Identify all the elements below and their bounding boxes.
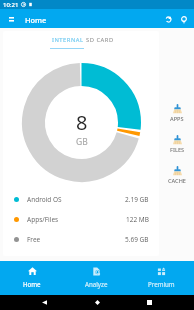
staticText: 5.69 GB: [125, 235, 149, 244]
staticText: 10:21: [3, 1, 19, 9]
button[interactable]: Menu: [3, 11, 19, 27]
staticText: APPS: [170, 115, 184, 123]
button[interactable]: Apps/Files: [14, 209, 149, 229]
staticText: 122 MB: [126, 215, 149, 224]
staticText: CACHE: [168, 177, 186, 185]
staticText: 8: [76, 109, 88, 136]
staticText: Home: [23, 280, 41, 288]
button[interactable]: Back: [38, 296, 51, 309]
staticText: Home: [25, 15, 47, 25]
staticText: Analyze: [85, 280, 108, 288]
button[interactable]: Refresh: [160, 11, 176, 27]
button[interactable]: Premium: [129, 261, 194, 295]
button[interactable]: Tips: [176, 11, 192, 27]
staticText: INTERNAL: [52, 36, 84, 44]
button[interactable]: INTERNAL: [38, 31, 98, 48]
staticText: 2.19 GB: [125, 195, 149, 204]
staticText: FILES: [170, 146, 185, 154]
staticText: GB: [76, 136, 88, 148]
button[interactable]: APPS: [162, 104, 192, 123]
staticText: Apps/Files: [27, 215, 59, 224]
staticText: Android OS: [27, 195, 62, 204]
button[interactable]: Analyze: [64, 261, 129, 295]
button[interactable]: CACHE: [162, 166, 192, 185]
button[interactable]: Recents: [143, 296, 156, 309]
button[interactable]: Home: [0, 261, 64, 295]
button[interactable]: Free: [14, 229, 149, 249]
staticText: SD CARD: [86, 36, 114, 44]
staticText: Free: [27, 235, 41, 244]
button[interactable]: Home: [91, 296, 104, 309]
button[interactable]: Android OS: [14, 189, 149, 209]
button[interactable]: FILES: [162, 135, 192, 154]
staticText: Premium: [148, 280, 175, 288]
button[interactable]: SD CARD: [74, 31, 125, 48]
